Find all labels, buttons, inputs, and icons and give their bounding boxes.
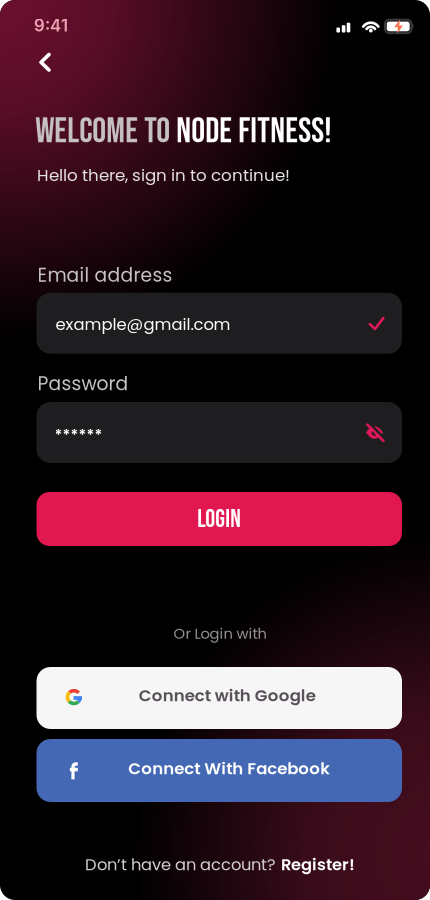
button[interactable]: Connect With Facebook xyxy=(0,0,430,900)
staticText: WELCOME TO xyxy=(35,111,176,153)
button[interactable] xyxy=(0,0,430,900)
button[interactable]: LOGIN xyxy=(0,0,430,900)
button[interactable] xyxy=(0,0,430,900)
staticText: Register! xyxy=(281,853,355,876)
staticText: NODE FITNESS! xyxy=(176,111,331,153)
staticText: example@gmail.com xyxy=(55,313,230,336)
staticText: Or Login with xyxy=(173,623,266,644)
staticText: ****** xyxy=(54,425,102,446)
staticText: LOGIN xyxy=(197,505,241,534)
staticText: Connect with Google xyxy=(139,684,316,707)
staticText: 9:41 xyxy=(34,15,68,36)
button[interactable]: Don’t have an account? xyxy=(0,0,430,900)
staticText: Hello there, sign in to continue! xyxy=(37,163,290,187)
staticText: Connect With Facebook xyxy=(128,757,330,780)
staticText: Don’t have an account? xyxy=(85,853,276,876)
staticText: Password xyxy=(37,371,128,397)
button[interactable]: Connect with Google xyxy=(0,0,430,900)
staticText: Email address xyxy=(37,262,172,288)
